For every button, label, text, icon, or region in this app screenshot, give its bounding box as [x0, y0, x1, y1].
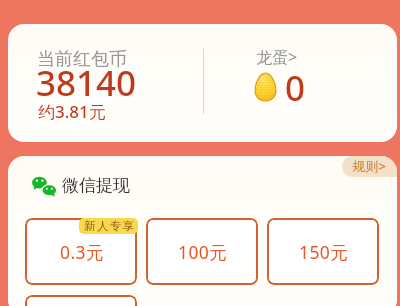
- staticText: 38140: [36, 59, 137, 107]
- button[interactable]: 规则>: [342, 156, 397, 177]
- staticText: 微信提现: [62, 175, 130, 196]
- staticText: 150元: [299, 240, 349, 264]
- other: Dragon egg: [255, 73, 276, 101]
- staticText: 约3.81元: [38, 100, 106, 123]
- button[interactable]: 0.3元: [25, 218, 137, 285]
- staticText: 0: [285, 64, 306, 112]
- staticText: 龙蛋>: [256, 46, 298, 68]
- staticText: 100元: [178, 240, 228, 264]
- staticText: 当前红包币: [37, 48, 127, 71]
- button[interactable]: [8, 24, 203, 142]
- button[interactable]: 150元: [267, 218, 379, 285]
- button[interactable]: [205, 24, 397, 142]
- other: WeChat: [32, 176, 56, 196]
- staticText: 规则>: [352, 157, 387, 175]
- staticText: 0.3元: [60, 240, 104, 264]
- button[interactable]: 100元: [146, 218, 258, 285]
- staticText: 新人专享: [84, 219, 136, 233]
- button[interactable]: 200元: [25, 295, 137, 306]
